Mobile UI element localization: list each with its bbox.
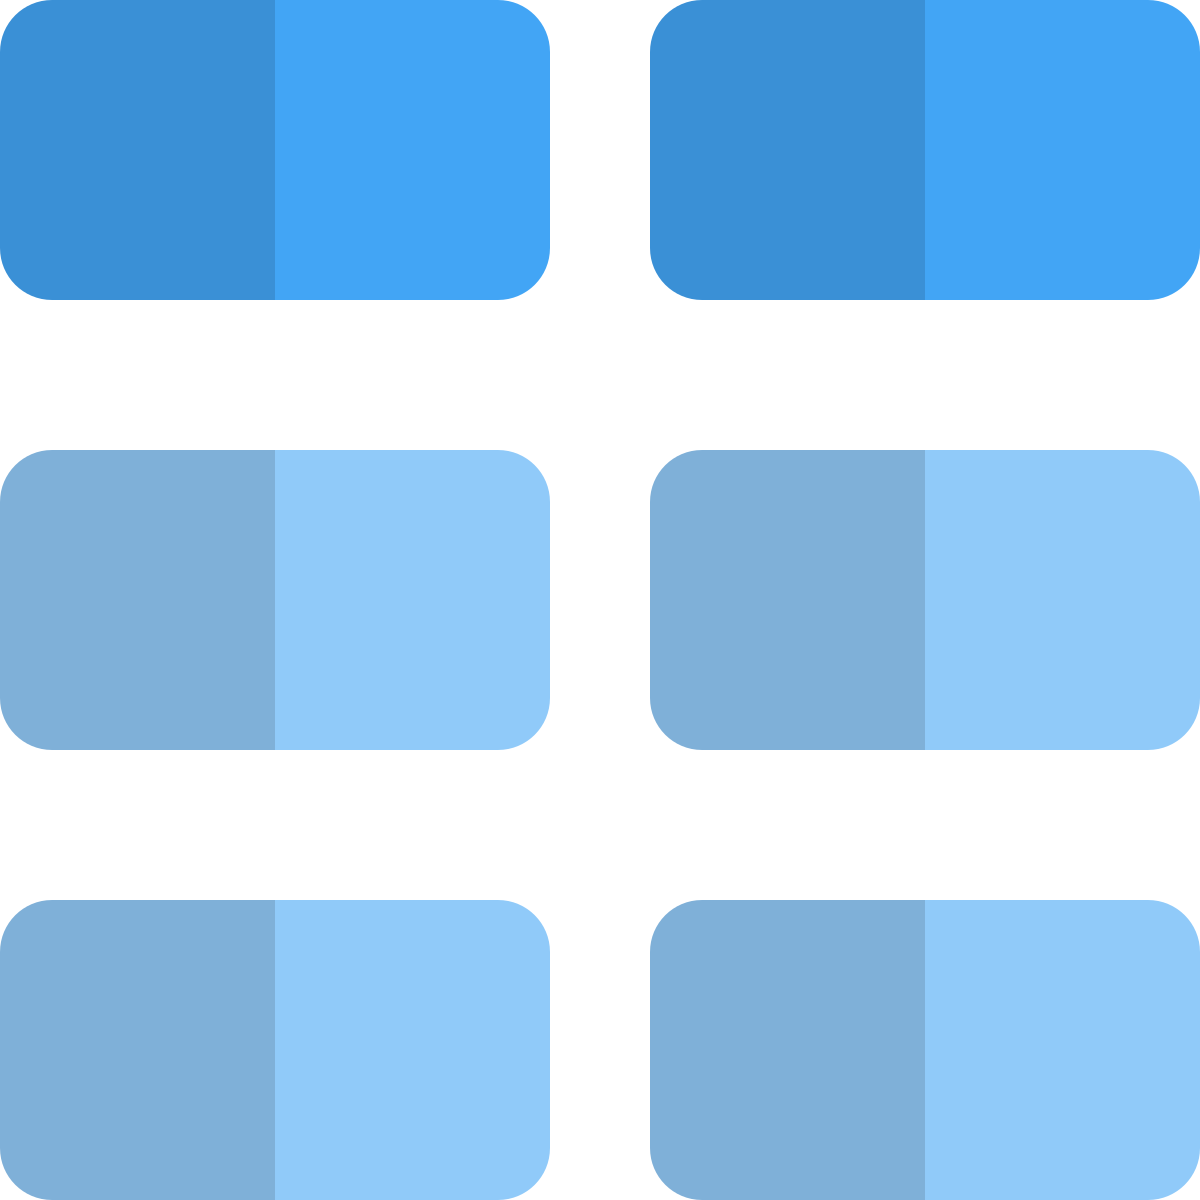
button[interactable]: Tile 6 [650,900,1200,1200]
button[interactable]: Tile 4 [650,450,1200,750]
button[interactable]: Tile 3 [0,450,550,750]
button[interactable]: Tile 2 [650,0,1200,300]
button[interactable]: Tile 5 [0,900,550,1200]
button[interactable]: Tile 1 [0,0,550,300]
